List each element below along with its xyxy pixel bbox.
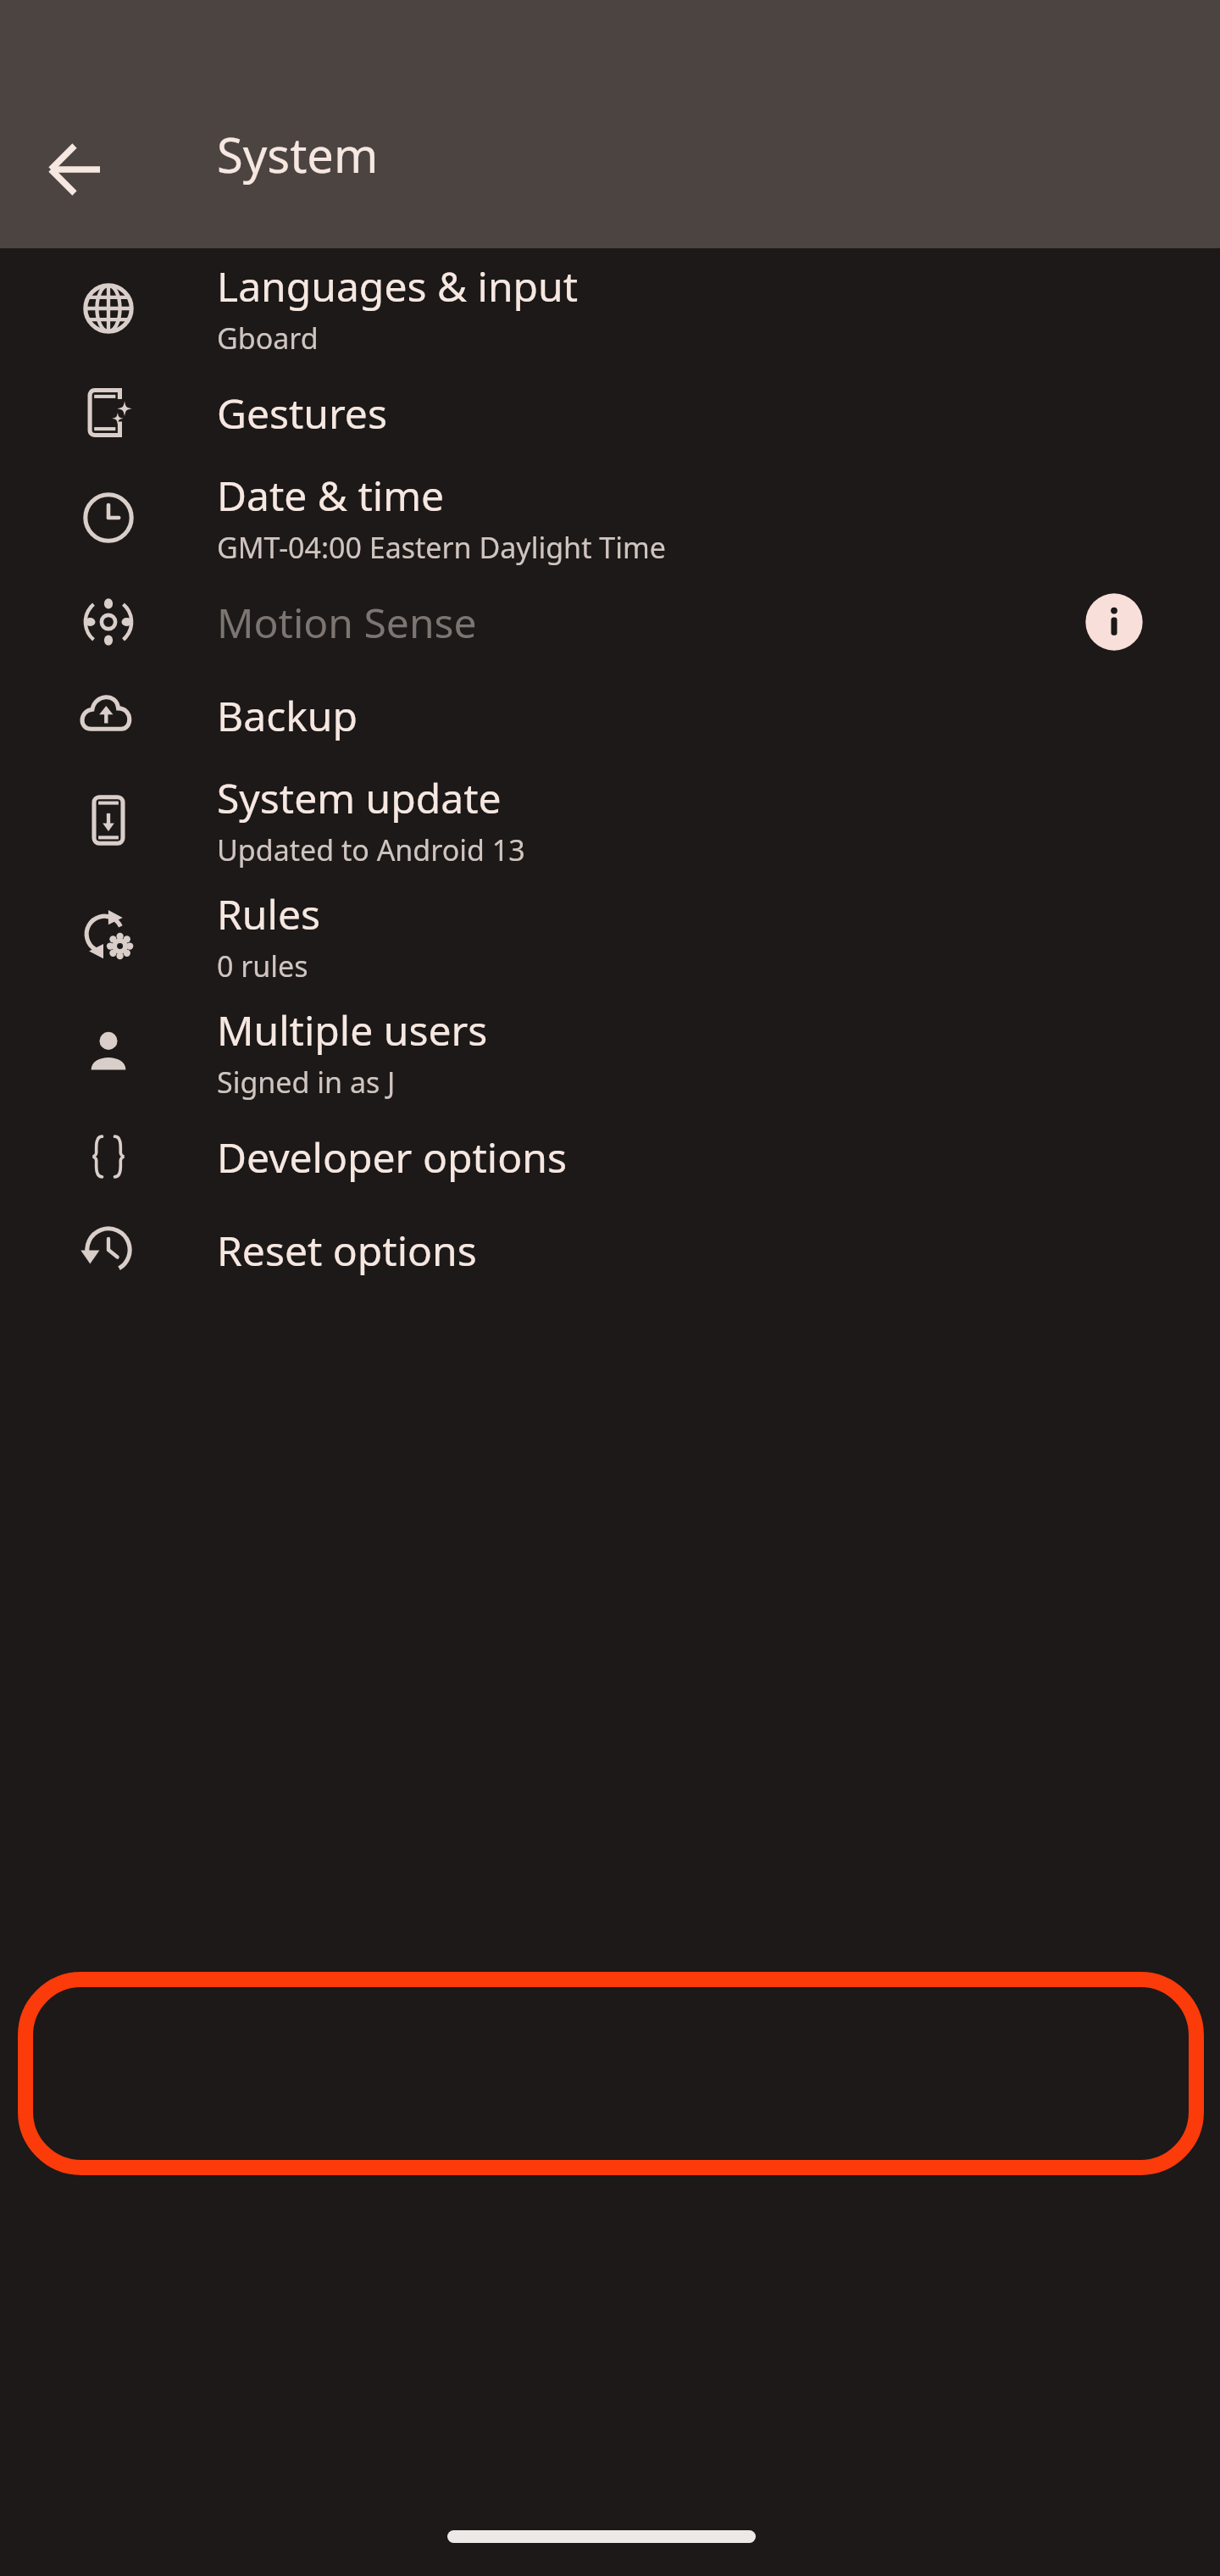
button[interactable]: Backup <box>0 669 1220 762</box>
button[interactable]: Gestures <box>0 366 1220 459</box>
staticText: Languages & input <box>217 258 579 314</box>
button[interactable]: Date & time <box>0 459 1220 575</box>
staticText: GMT-04:00 Eastern Daylight Time <box>217 528 666 567</box>
staticText: System update <box>217 770 502 825</box>
button[interactable]: More information <box>1083 591 1145 653</box>
staticText: Signed in as J <box>217 1063 396 1102</box>
staticText: Motion Sense <box>217 595 477 650</box>
button[interactable]: System update <box>0 762 1220 878</box>
staticText: Gestures <box>217 386 387 441</box>
staticText: System <box>217 122 379 186</box>
staticText: Updated to Android 13 <box>217 830 525 869</box>
button[interactable]: Multiple users <box>0 994 1220 1110</box>
button[interactable]: Back <box>41 134 112 205</box>
button[interactable]: Languages & input <box>0 250 1220 366</box>
button[interactable]: Rules <box>0 878 1220 994</box>
staticText: Backup <box>217 688 358 743</box>
staticText: Gboard <box>217 319 319 358</box>
button[interactable]: Motion Sense <box>0 575 1220 669</box>
staticText: 0 rules <box>217 947 308 985</box>
staticText: Developer options <box>217 1130 567 1185</box>
staticText: Reset options <box>217 1223 477 1278</box>
button[interactable]: Developer options <box>0 1110 1220 1203</box>
staticText: Multiple users <box>217 1002 488 1058</box>
staticText: Rules <box>217 886 320 941</box>
staticText: Date & time <box>217 468 445 523</box>
button[interactable]: Reset options <box>0 1203 1220 1296</box>
